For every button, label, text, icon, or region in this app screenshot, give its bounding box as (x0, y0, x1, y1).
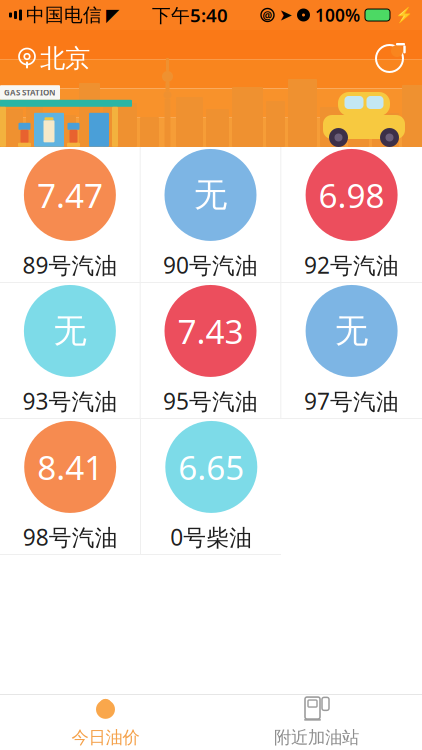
staticText: 6.98 (319, 173, 385, 217)
staticText: 7.43 (177, 309, 243, 353)
staticText: 100% (315, 3, 360, 26)
button[interactable]: 7.47 (0, 147, 141, 282)
staticText: 北京 (40, 43, 90, 74)
staticText: 中国电信 (26, 3, 102, 26)
button[interactable]: 6.98 (281, 147, 422, 282)
button[interactable]: 北京 (11, 40, 96, 77)
button[interactable]: 无 (141, 147, 281, 282)
staticText: 95号汽油 (163, 386, 258, 416)
staticText: 97号汽油 (304, 386, 399, 416)
staticText: ⚡ (395, 7, 413, 23)
staticText: 89号汽油 (22, 250, 117, 280)
button[interactable]: 无 (0, 283, 141, 418)
staticText: 无 (335, 310, 368, 351)
staticText: ◤ (106, 5, 119, 25)
staticText: 6.65 (178, 445, 244, 489)
staticText: 92号汽油 (304, 250, 399, 280)
button[interactable]: 6.65 (141, 419, 282, 554)
staticText: 98号汽油 (23, 522, 118, 552)
button[interactable]: 无 (281, 283, 422, 418)
staticText: 90号汽油 (163, 250, 258, 280)
staticText: @ (262, 8, 272, 22)
staticText: 0号柴油 (170, 522, 252, 552)
staticText: 下午5:40 (152, 3, 228, 27)
staticText: 7.47 (37, 173, 103, 217)
staticText: 附近加油站 (274, 727, 359, 748)
staticText: 无 (53, 310, 86, 351)
staticText: 93号汽油 (22, 386, 117, 416)
staticText: ➤ (279, 6, 292, 24)
button[interactable]: 附近加油站 (211, 695, 422, 750)
button[interactable]: 今日油价 (0, 695, 211, 750)
button[interactable]: 8.41 (0, 419, 141, 554)
staticText: 8.41 (37, 445, 103, 489)
staticText: 无 (194, 174, 227, 215)
staticText: 今日油价 (71, 727, 139, 748)
button[interactable]: 刷新 (368, 37, 411, 80)
staticText: GAS STATION (4, 87, 56, 98)
button[interactable]: 7.43 (141, 283, 281, 418)
